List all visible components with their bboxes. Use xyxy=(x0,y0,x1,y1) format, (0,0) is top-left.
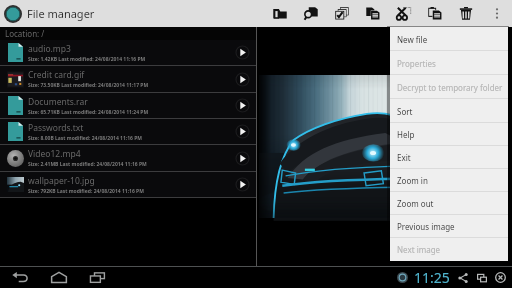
staticText: Previous image xyxy=(397,221,455,232)
button[interactable]: Help xyxy=(390,123,508,146)
button[interactable]: Copy xyxy=(357,0,388,27)
button[interactable]: audio.mp3 xyxy=(0,40,256,65)
button[interactable]: Recent apps xyxy=(86,267,109,287)
staticText: Size: 792KB Last modified: 24/08/2014 11… xyxy=(28,188,144,195)
staticText: Size: 2.41MB Last modified: 24/08/2014 1… xyxy=(28,161,147,168)
staticText: Location: / xyxy=(5,28,45,39)
button[interactable]: Decrypt to temporary folder xyxy=(390,75,508,99)
button[interactable]: Share xyxy=(455,270,470,285)
button[interactable]: Search file xyxy=(295,0,326,27)
button[interactable]: Delete xyxy=(450,0,481,27)
button[interactable]: Cut xyxy=(388,0,419,27)
staticText: Sort xyxy=(397,106,413,117)
staticText: audio.mp3 xyxy=(28,43,71,55)
button[interactable]: Back xyxy=(8,267,31,287)
staticText: Next image xyxy=(397,244,441,255)
button[interactable]: Credit card.gif xyxy=(0,66,256,92)
staticText: Video12.mp4 xyxy=(28,148,81,160)
staticText: Documents.rar xyxy=(28,96,88,108)
staticText: Exit xyxy=(397,152,411,163)
button[interactable]: Home xyxy=(47,267,70,287)
staticText: Credit card.gif xyxy=(28,69,85,81)
button[interactable]: Exit xyxy=(390,146,508,169)
button[interactable]: Paste xyxy=(419,0,450,27)
button[interactable]: Notifications xyxy=(394,269,410,285)
button[interactable]: Open folder xyxy=(264,0,295,27)
staticText: New file xyxy=(397,34,428,45)
staticText: 11:25 xyxy=(414,268,450,287)
button[interactable]: Screenshot xyxy=(474,270,489,285)
staticText: Size: 8.00B Last modified: 24/08/2014 11… xyxy=(28,135,143,142)
button[interactable]: Open audio.mp3 xyxy=(232,42,253,63)
button[interactable]: Zoom in xyxy=(390,169,508,192)
button[interactable]: More options xyxy=(481,0,512,27)
staticText: Size: 1.42KB Last modified: 24/08/2014 1… xyxy=(28,56,146,63)
button[interactable]: Close xyxy=(493,270,508,285)
staticText: Size: 65.71KB Last modified: 24/08/2014 … xyxy=(28,109,149,116)
button[interactable]: Open wallpaper-10.jpg xyxy=(232,174,253,195)
button[interactable]: Documents.rar xyxy=(0,93,256,118)
button[interactable]: Video12.mp4 xyxy=(0,145,256,171)
staticText: Zoom in xyxy=(397,175,428,186)
button[interactable]: Properties xyxy=(390,51,508,75)
button[interactable]: Previous image xyxy=(390,215,508,238)
button[interactable]: Zoom out xyxy=(390,192,508,215)
staticText: Properties xyxy=(397,58,436,69)
button[interactable]: Passwords.txt xyxy=(0,119,256,144)
staticText: Zoom out xyxy=(397,198,434,209)
button[interactable]: Open Passwords.txt xyxy=(232,121,253,142)
button[interactable]: Open Credit card.gif xyxy=(232,69,253,90)
staticText: Decrypt to temporary folder xyxy=(397,82,503,93)
button[interactable]: New file xyxy=(390,27,508,51)
button[interactable]: wallpaper-10.jpg xyxy=(0,172,256,197)
staticText: Size: 73.50KB Last modified: 24/08/2014 … xyxy=(28,82,149,89)
staticText: Help xyxy=(397,129,415,140)
staticText: wallpaper-10.jpg xyxy=(28,175,95,187)
button[interactable]: Select all xyxy=(326,0,357,27)
staticText: Passwords.txt xyxy=(28,122,84,134)
button[interactable]: Next image xyxy=(390,238,508,261)
button[interactable]: Sort xyxy=(390,99,508,123)
button[interactable]: Open Video12.mp4 xyxy=(232,148,253,169)
button[interactable]: Open Documents.rar xyxy=(232,95,253,116)
staticText: File manager xyxy=(27,6,95,21)
